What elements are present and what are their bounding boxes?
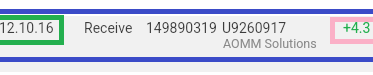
staticText: 12.10.16 (0, 20, 54, 36)
staticText: +4.3 (343, 20, 371, 36)
staticText: 149890319 (146, 20, 217, 36)
staticText: AOMM Solutions (223, 36, 317, 51)
staticText: Receive (84, 20, 133, 36)
staticText: U9260917 (222, 20, 287, 36)
